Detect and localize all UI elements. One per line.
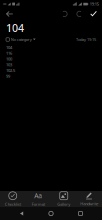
staticText: 104	[6, 45, 12, 50]
button[interactable]: Recents	[72, 207, 88, 220]
button[interactable]: Handwrite	[76, 191, 102, 207]
staticText: 103	[6, 62, 12, 67]
staticText: 99	[6, 74, 10, 79]
button[interactable]: Back	[2, 7, 16, 20]
staticText: Checklist	[5, 201, 21, 207]
button[interactable]: Save	[87, 8, 100, 20]
staticText: Gallery	[57, 201, 70, 207]
staticText: 100	[6, 56, 12, 62]
button[interactable]: No category	[6, 37, 36, 42]
staticText: Aa	[34, 191, 42, 200]
button[interactable]: Back	[13, 207, 29, 220]
staticText: 19:15	[90, 1, 99, 7]
staticText: Format	[32, 201, 45, 207]
button[interactable]: Checklist	[0, 191, 25, 207]
staticText: No category	[11, 37, 32, 42]
staticText: 116	[6, 50, 12, 56]
button[interactable]: Aa	[25, 191, 51, 207]
staticText: 102.5	[6, 68, 15, 73]
button[interactable]: Gallery	[51, 191, 76, 207]
button[interactable]: Redo	[72, 8, 87, 20]
staticText: Today 19:15	[76, 37, 96, 42]
staticText: 104	[6, 21, 24, 35]
button[interactable]: Undo	[57, 8, 72, 20]
staticText: Handwrite	[80, 201, 98, 206]
button[interactable]: Home	[43, 207, 59, 220]
